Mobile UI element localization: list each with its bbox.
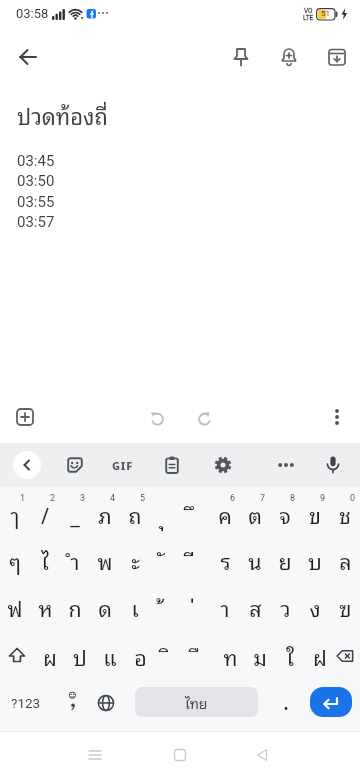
staticText: 03:45: [17, 152, 55, 170]
button[interactable]: [89, 679, 123, 727]
button[interactable]: [0, 633, 33, 679]
button[interactable]: ไ: [30, 537, 60, 583]
staticText: ม: [253, 639, 267, 673]
button[interactable]: จ: [270, 491, 300, 537]
staticText: ร: [220, 543, 231, 577]
staticText: ๅ: [10, 497, 20, 531]
button[interactable]: ้: [150, 584, 180, 630]
button[interactable]: เ: [120, 584, 150, 630]
button[interactable]: ภ: [90, 491, 120, 537]
button[interactable]: ห: [30, 584, 60, 630]
staticText: 8: [290, 493, 296, 504]
button[interactable]: ย: [270, 537, 300, 583]
button[interactable]: ป: [65, 633, 95, 679]
button[interactable]: [57, 447, 93, 483]
button[interactable]: _: [60, 491, 90, 537]
button[interactable]: [219, 35, 263, 79]
button[interactable]: ฝ: [305, 633, 335, 679]
staticText: ต: [248, 497, 262, 531]
button[interactable]: [13, 451, 41, 479]
staticText: เ: [131, 590, 139, 624]
staticText: GIF: [112, 458, 133, 473]
staticText: ?123: [11, 695, 41, 711]
button[interactable]: [310, 687, 352, 717]
button[interactable]: แ: [95, 633, 125, 679]
button[interactable]: น: [240, 537, 270, 583]
button[interactable]: ฟ: [0, 584, 30, 630]
staticText: ๆ: [9, 543, 21, 577]
button[interactable]: [205, 447, 241, 483]
staticText: 03:57: [17, 213, 55, 231]
button[interactable]: ่: [180, 584, 210, 630]
button[interactable]: [135, 395, 179, 439]
staticText: ไ: [41, 543, 49, 577]
button[interactable]: ๅ: [0, 491, 30, 537]
button[interactable]: [268, 447, 304, 483]
button[interactable]: ม: [245, 633, 275, 679]
button[interactable]: ก: [60, 584, 90, 630]
button[interactable]: ี: [180, 537, 210, 583]
button[interactable]: [6, 35, 50, 79]
button[interactable]: ด: [90, 584, 120, 630]
staticText: ช: [339, 497, 351, 531]
button[interactable]: [315, 395, 359, 439]
staticText: 03:50: [17, 172, 55, 190]
staticText: ง: [309, 590, 321, 624]
button[interactable]: ั: [150, 537, 180, 583]
button[interactable]: [182, 395, 226, 439]
button[interactable]: ต: [240, 491, 270, 537]
staticText: VO: [304, 7, 313, 15]
staticText: 1: [20, 493, 26, 504]
button[interactable]: ะ: [120, 537, 150, 583]
button[interactable]: [154, 447, 190, 483]
button[interactable]: [268, 679, 304, 727]
button[interactable]: [73, 733, 117, 777]
button[interactable]: [240, 733, 284, 777]
button[interactable]: บ: [300, 537, 330, 583]
button[interactable]: [55, 679, 89, 727]
button[interactable]: ท: [215, 633, 245, 679]
button[interactable]: [315, 35, 359, 79]
staticText: 3: [80, 493, 86, 504]
staticText: ฟ: [7, 590, 23, 624]
button[interactable]: ง: [300, 584, 330, 630]
staticText: 03:55: [17, 193, 55, 211]
button[interactable]: [315, 447, 351, 483]
button[interactable]: ิ: [155, 633, 185, 679]
button[interactable]: ผ: [35, 633, 65, 679]
button[interactable]: ล: [330, 537, 360, 583]
button[interactable]: ข: [300, 491, 330, 537]
button[interactable]: ถ: [120, 491, 150, 537]
button[interactable]: ?123: [0, 679, 52, 727]
button[interactable]: ฃ: [330, 584, 360, 630]
button[interactable]: ๆ: [0, 537, 30, 583]
button[interactable]: ำ: [60, 537, 90, 583]
button[interactable]: [330, 633, 360, 679]
button[interactable]: ว: [270, 584, 300, 630]
staticText: 4: [110, 493, 116, 504]
staticText: จ: [279, 497, 291, 531]
button[interactable]: ใ: [275, 633, 305, 679]
button[interactable]: า: [210, 584, 240, 630]
staticText: ภ: [98, 497, 112, 531]
button[interactable]: ไทย: [135, 687, 258, 717]
button[interactable]: GIF: [104, 447, 140, 483]
button[interactable]: /: [30, 491, 60, 537]
button[interactable]: [158, 733, 202, 777]
staticText: ำ: [70, 543, 80, 577]
button[interactable]: ส: [240, 584, 270, 630]
button[interactable]: ค: [210, 491, 240, 537]
button[interactable]: ึ: [180, 491, 210, 537]
button[interactable]: ื: [185, 633, 215, 679]
button[interactable]: ช: [330, 491, 360, 537]
button[interactable]: [267, 35, 311, 79]
staticText: ผ: [43, 639, 57, 673]
button[interactable]: ุ: [150, 491, 180, 537]
button[interactable]: ร: [210, 537, 240, 583]
staticText: ไทย: [185, 691, 208, 713]
button[interactable]: [3, 395, 47, 439]
button[interactable]: พ: [90, 537, 120, 583]
staticText: แ: [103, 639, 117, 673]
button[interactable]: อ: [125, 633, 155, 679]
staticText: ป: [73, 639, 87, 673]
